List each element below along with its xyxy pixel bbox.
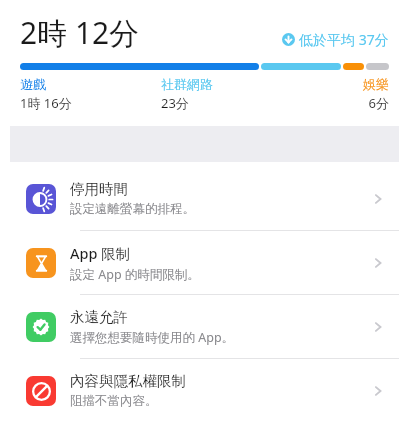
- staticText: 遊戲: [20, 76, 161, 92]
- staticText: 娛樂: [302, 76, 389, 92]
- staticText: 永遠允許: [70, 308, 128, 326]
- button[interactable]: 停用時間: [10, 167, 399, 230]
- staticText: 內容與隱私權限制: [70, 372, 186, 390]
- staticText: 設定遠離螢幕的排程。: [70, 201, 195, 217]
- staticText: 2時 12分: [20, 12, 140, 53]
- staticText: 低於平均 37分: [299, 30, 389, 49]
- staticText: 23分: [161, 94, 302, 112]
- button[interactable]: App 限制: [10, 231, 399, 294]
- staticText: 設定 App 的時間限制。: [70, 266, 200, 283]
- button[interactable]: 永遠允許: [10, 295, 399, 358]
- button[interactable]: 內容與隱私權限制: [10, 359, 399, 422]
- staticText: 阻擋不當內容。: [70, 393, 158, 409]
- staticText: 6分: [302, 94, 389, 112]
- staticText: App 限制: [70, 243, 131, 263]
- staticText: 社群網路: [161, 76, 302, 92]
- staticText: 1時 16分: [20, 94, 161, 112]
- staticText: 選擇您想要隨時使用的 App。: [70, 329, 235, 346]
- staticText: 停用時間: [70, 180, 128, 198]
